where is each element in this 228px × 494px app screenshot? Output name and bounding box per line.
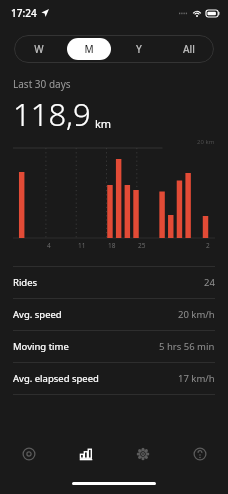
staticText: 18 (108, 241, 116, 250)
staticText: Rides (13, 276, 38, 289)
staticText: W (34, 42, 44, 56)
staticText: 17 km/h (178, 372, 215, 385)
staticText: 4 (47, 241, 51, 250)
staticText: M (84, 42, 94, 56)
button[interactable]: Avg. elapsed speed (0, 363, 228, 394)
button[interactable]: Statistics (57, 435, 114, 473)
staticText: Avg. speed (13, 308, 62, 321)
staticText: Last 30 days (13, 77, 71, 91)
staticText: 118,9 (13, 93, 91, 135)
staticText: 2 (206, 241, 210, 250)
staticText: 17:24 (11, 6, 37, 20)
button[interactable]: Y (117, 38, 161, 60)
staticText: Y (136, 42, 142, 56)
staticText: 20 km (197, 138, 215, 146)
staticText: Avg. elapsed speed (13, 372, 99, 385)
staticText: 25 (138, 241, 146, 250)
button[interactable]: Settings (114, 435, 171, 473)
button[interactable]: Map (0, 435, 57, 473)
staticText: 5 hrs 56 min (159, 340, 215, 353)
staticText: 20 km/h (178, 308, 215, 321)
button[interactable]: M (67, 38, 111, 60)
button[interactable]: All (167, 38, 211, 60)
button[interactable]: Rides (0, 267, 228, 298)
button[interactable]: W (17, 38, 61, 60)
staticText: 24 (204, 276, 215, 289)
staticText: Moving time (13, 340, 69, 353)
button[interactable]: Help (171, 435, 228, 473)
staticText: All (183, 42, 195, 56)
button[interactable]: Avg. speed (0, 299, 228, 330)
button[interactable]: Moving time (0, 331, 228, 362)
staticText: 11 (78, 241, 86, 250)
staticText: km (95, 116, 112, 131)
